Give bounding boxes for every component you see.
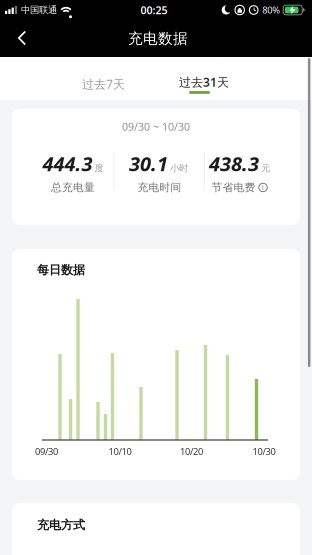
staticText: 09/30 [35,445,58,458]
staticText: 444.3 [42,150,92,177]
staticText: 00:25 [140,3,167,17]
staticText: 充电数据 [128,29,188,47]
button[interactable] [0,20,47,56]
button[interactable]: 过去31天 [169,57,239,100]
staticText: 充电方式 [37,518,85,532]
staticText: 每日数据 [37,263,85,277]
staticText: 30.1 [129,150,168,177]
staticText: 10/30 [252,445,275,458]
staticText: 09/30 ~ 10/30 [122,119,190,134]
staticText: 中国联通 [21,4,57,16]
staticText: 总充电量 [51,181,95,194]
staticText: 10/10 [108,445,131,458]
staticText: 小时 [170,162,188,174]
staticText: 节省电费 [211,181,255,194]
staticText: i [262,183,264,192]
button[interactable]: 过去7天 [68,57,138,100]
staticText: 过去31天 [179,74,229,90]
staticText: 过去7天 [82,76,125,92]
staticText: 充电时间 [137,181,181,194]
staticText: 度 [94,162,103,174]
staticText: 10/20 [180,445,203,458]
button[interactable]: i [258,183,267,192]
staticText: 80% [262,4,280,16]
staticText: 438.3 [209,150,259,177]
staticText: 元 [261,162,270,174]
